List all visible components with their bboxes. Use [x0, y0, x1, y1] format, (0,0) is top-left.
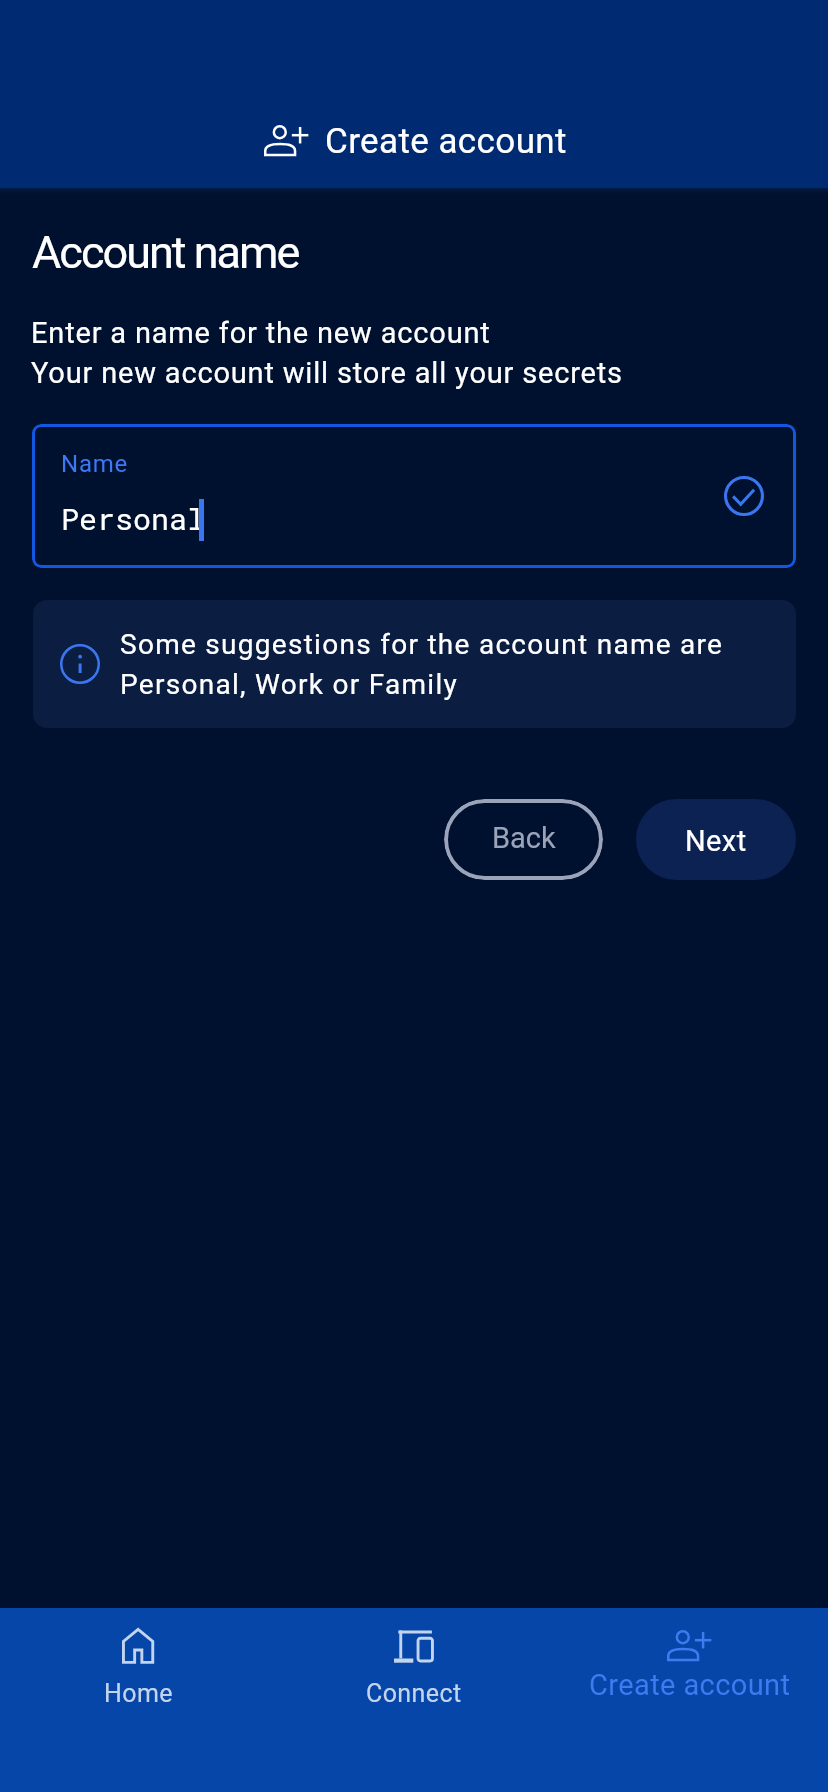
staticText: Account name [32, 226, 299, 279]
staticText: Name [61, 450, 129, 478]
staticText: Next [685, 824, 747, 858]
other: Information [60, 644, 100, 684]
button[interactable]: Connect [276, 1608, 552, 1792]
button[interactable]: Create account [261, 121, 567, 162]
button[interactable]: Name [32, 424, 796, 568]
staticText: Back [492, 821, 556, 855]
staticText: Create account [325, 121, 567, 162]
staticText: Connect [366, 1679, 462, 1708]
button[interactable]: Create account [552, 1608, 828, 1792]
staticText: Personal [61, 499, 206, 539]
staticText: Home [104, 1679, 173, 1708]
staticText: Create account [589, 1668, 791, 1702]
button[interactable]: Next [636, 799, 796, 880]
other: Valid [724, 476, 764, 516]
button[interactable]: Back [444, 799, 603, 880]
button[interactable]: Home [0, 1608, 276, 1792]
staticText: Some suggestions for the account name ar… [120, 628, 724, 701]
staticText: Enter a name for the new account Your ne… [31, 316, 623, 390]
